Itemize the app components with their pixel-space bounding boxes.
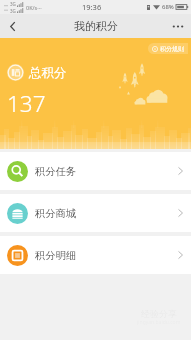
staticText: 3G [10, 8, 16, 13]
staticText: 137 [7, 88, 46, 119]
staticText: 积分任务 [35, 165, 77, 178]
staticText: 积分商城 [35, 207, 77, 220]
staticText: 我的积分 [74, 19, 118, 33]
staticText: 19:36 [82, 2, 102, 12]
button[interactable]: 积分商城 [0, 194, 191, 232]
button[interactable]: 积分规则 [148, 43, 188, 54]
button[interactable]: More options [165, 14, 191, 38]
button[interactable]: 积分明细 [0, 236, 191, 274]
button[interactable]: Back [0, 14, 26, 38]
staticText: 3G [10, 1, 16, 7]
staticText: 0K/s··· [26, 4, 42, 11]
staticText: 积分规则 [160, 45, 184, 53]
button[interactable]: 积分任务 [0, 152, 191, 190]
staticText: 68% [162, 3, 174, 11]
staticText: 积分明细 [35, 249, 77, 262]
staticText: 总积分 [29, 65, 67, 81]
